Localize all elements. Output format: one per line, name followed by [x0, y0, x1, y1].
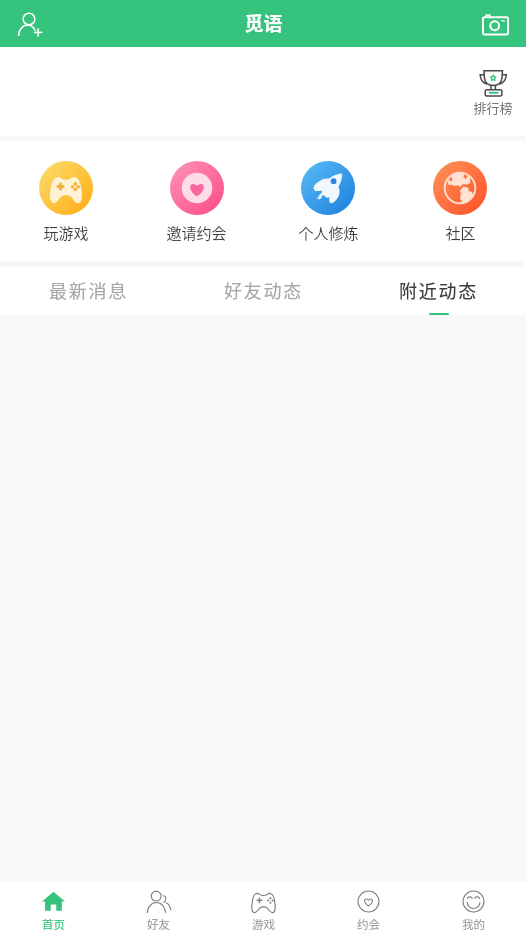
staticText: 觅语 [244, 9, 283, 37]
button[interactable]: 好友动态 [176, 267, 351, 315]
staticText: 约会 [357, 916, 380, 933]
button[interactable]: 游戏 [211, 882, 316, 935]
button[interactable]: 邀请约会 [131, 141, 262, 261]
staticText: 社区 [445, 222, 476, 244]
staticText: 玩游戏 [43, 222, 89, 244]
staticText: 个人修炼 [298, 222, 359, 244]
button[interactable]: 好友 [106, 882, 211, 935]
staticText: 附近动态 [399, 277, 478, 303]
button[interactable]: Add friend [18, 11, 43, 36]
button[interactable]: 最新消息 [0, 267, 176, 315]
button[interactable]: 我的 [421, 882, 526, 935]
staticText: 游戏 [252, 916, 275, 933]
staticText: 好友 [147, 916, 170, 933]
staticText: 排行榜 [473, 98, 513, 117]
button[interactable]: 玩游戏 [0, 141, 131, 261]
button[interactable]: 首页 [0, 882, 106, 935]
staticText: 邀请约会 [166, 222, 227, 244]
staticText: 我的 [462, 916, 485, 933]
button[interactable]: 个人修炼 [262, 141, 394, 261]
button[interactable]: Camera [482, 10, 509, 37]
button[interactable]: 社区 [394, 141, 526, 261]
staticText: 好友动态 [224, 277, 303, 303]
button[interactable]: 排行榜 [473, 68, 513, 117]
button[interactable]: 附近动态 [351, 267, 526, 315]
staticText: 最新消息 [49, 277, 128, 303]
staticText: 首页 [42, 916, 65, 933]
button[interactable]: 约会 [316, 882, 421, 935]
